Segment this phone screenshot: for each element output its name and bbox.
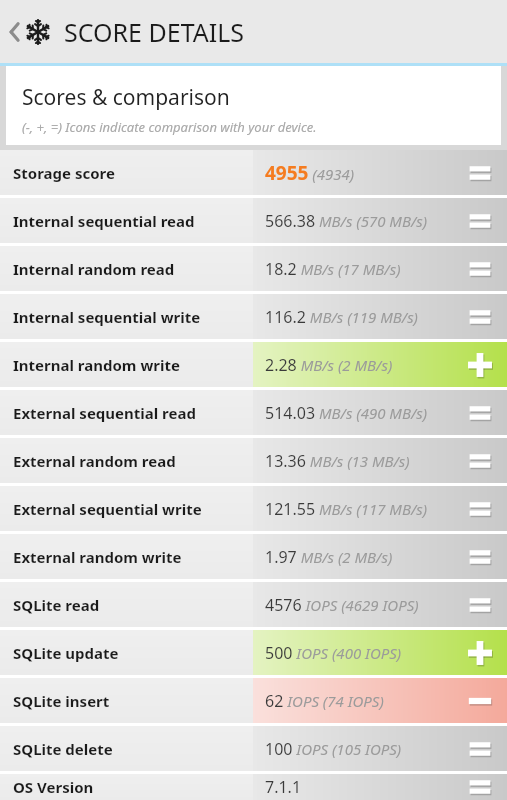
button[interactable]: External random read	[0, 438, 507, 483]
other: Equal to your device	[467, 256, 493, 282]
staticText: (-, +, =) Icons indicate comparison with…	[22, 118, 317, 136]
other: Equal to your device	[467, 592, 493, 618]
button[interactable]: Internal random write	[0, 342, 507, 387]
staticText: 18.2 MB/s (17 MB/s)	[265, 258, 401, 280]
other: Better than your device	[467, 352, 493, 378]
staticText: Internal sequential read	[13, 211, 195, 231]
staticText: External random write	[13, 547, 182, 567]
button[interactable]: SQLite read	[0, 582, 507, 627]
staticText: Internal sequential write	[13, 307, 201, 327]
other: Equal to your device	[467, 304, 493, 330]
staticText: External sequential write	[13, 499, 202, 519]
other: Worse than your device	[467, 688, 493, 714]
other: Equal to your device	[467, 736, 493, 762]
staticText: External sequential read	[13, 403, 196, 423]
staticText: 62 IOPS (74 IOPS)	[265, 690, 384, 712]
staticText: Internal random write	[13, 355, 180, 375]
staticText: 1.97 MB/s (2 MB/s)	[265, 546, 393, 568]
button[interactable]: Back	[4, 11, 56, 53]
staticText: Internal random read	[13, 259, 175, 279]
other: Equal to your device	[467, 774, 493, 800]
other: Equal to your device	[467, 400, 493, 426]
other: Equal to your device	[467, 496, 493, 522]
other: Better than your device	[467, 640, 493, 666]
staticText: 13.36 MB/s (13 MB/s)	[265, 450, 410, 472]
staticText: 121.55 MB/s (117 MB/s)	[265, 498, 428, 520]
staticText: 500 IOPS (400 IOPS)	[265, 642, 402, 664]
button[interactable]: SQLite insert	[0, 678, 507, 723]
other: Equal to your device	[467, 160, 493, 186]
button[interactable]: External sequential read	[0, 390, 507, 435]
staticText: 2.28 MB/s (2 MB/s)	[265, 354, 393, 376]
staticText: Storage score	[13, 163, 115, 183]
staticText: External random read	[13, 451, 176, 471]
staticText: 116.2 MB/s (119 MB/s)	[265, 306, 418, 328]
other: Equal to your device	[467, 208, 493, 234]
button[interactable]: SQLite delete	[0, 726, 507, 771]
staticText: SQLite read	[13, 595, 100, 615]
button[interactable]: External sequential write	[0, 486, 507, 531]
staticText: 566.38 MB/s (570 MB/s)	[265, 210, 428, 232]
staticText: 7.1.1	[265, 776, 302, 798]
button[interactable]: External random write	[0, 534, 507, 579]
staticText: SQLite delete	[13, 739, 113, 759]
staticText: SCORE DETAILS	[64, 15, 245, 49]
button[interactable]: SQLite update	[0, 630, 507, 675]
button[interactable]: Storage score	[0, 150, 507, 195]
staticText: Scores & comparison	[22, 83, 230, 112]
other: Equal to your device	[467, 544, 493, 570]
staticText: OS Version	[13, 777, 94, 797]
staticText: 4576 IOPS (4629 IOPS)	[265, 594, 419, 616]
other: Equal to your device	[467, 448, 493, 474]
staticText: SQLite update	[13, 643, 119, 663]
button[interactable]: Internal sequential write	[0, 294, 507, 339]
button[interactable]: Internal random read	[0, 246, 507, 291]
staticText: 514.03 MB/s (490 MB/s)	[265, 402, 428, 424]
button[interactable]: Internal sequential read	[0, 198, 507, 243]
staticText: 100 IOPS (105 IOPS)	[265, 738, 402, 760]
staticText: 4955 (4934)	[265, 160, 355, 186]
staticText: SQLite insert	[13, 691, 110, 711]
button[interactable]: OS Version	[0, 774, 507, 800]
